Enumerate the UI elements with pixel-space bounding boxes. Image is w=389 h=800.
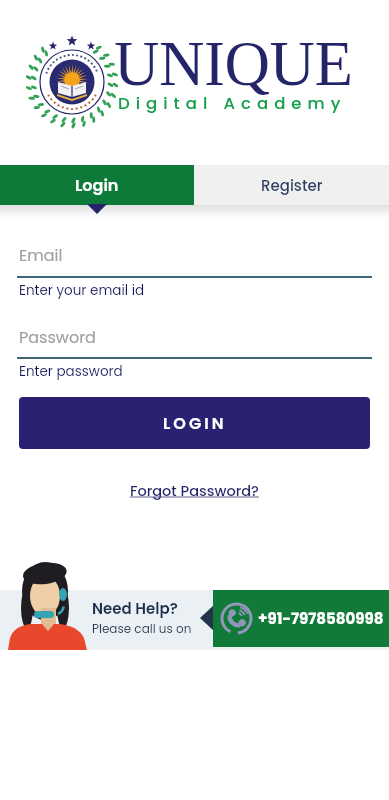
staticText: Email — [19, 244, 63, 266]
button[interactable]: LOGIN — [19, 397, 370, 449]
button[interactable]: +91-7978580998 — [213, 590, 389, 647]
staticText: Digital Academy — [118, 92, 347, 115]
staticText: Need Help? — [92, 598, 178, 619]
button[interactable]: Enter password — [19, 362, 123, 381]
staticText: +91-7978580998 — [258, 608, 384, 629]
staticText: UNIQUE — [114, 29, 353, 99]
button[interactable]: Login — [0, 165, 194, 205]
staticText: Password — [19, 326, 96, 348]
button[interactable]: Forgot Password? — [130, 481, 259, 501]
button[interactable]: Register — [194, 165, 389, 205]
staticText: Login — [75, 174, 119, 196]
staticText: Register — [261, 175, 323, 196]
staticText: Please call us on — [92, 620, 192, 637]
button[interactable]: Enter your email id — [19, 281, 145, 300]
staticText: LOGIN — [163, 412, 227, 434]
